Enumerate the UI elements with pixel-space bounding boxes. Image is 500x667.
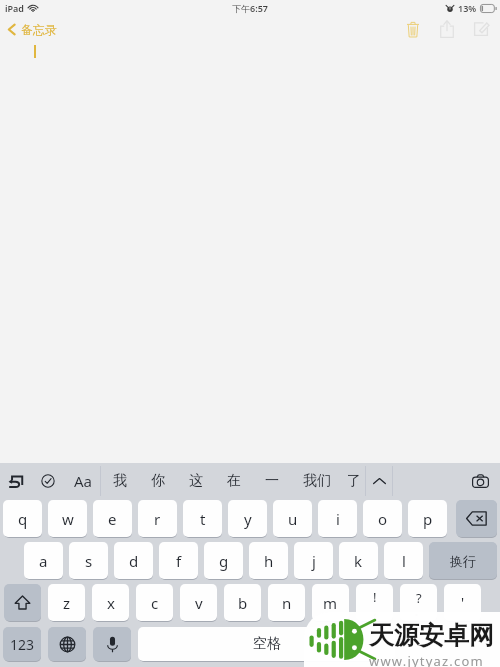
staticText: Aa	[74, 471, 93, 491]
staticText: 一	[265, 472, 279, 490]
staticText: 空格	[253, 635, 281, 653]
button[interactable]: ?	[400, 584, 437, 622]
staticText: 了	[347, 472, 361, 490]
staticText: h	[264, 551, 274, 571]
staticText: o	[378, 509, 388, 529]
button[interactable]: 、	[410, 627, 450, 662]
staticText: 13%	[458, 2, 477, 14]
staticText: 在	[227, 472, 241, 490]
button[interactable]: r	[138, 500, 177, 538]
staticText: 备忘录	[21, 22, 57, 37]
button[interactable]: Camera	[460, 463, 500, 498]
button[interactable]: e	[93, 500, 132, 538]
staticText: m	[323, 593, 338, 613]
staticText: t	[200, 509, 206, 529]
button[interactable]: Backspace	[456, 500, 497, 538]
button[interactable]: u	[273, 500, 312, 538]
button[interactable]: b	[224, 584, 261, 622]
staticText: 你	[151, 472, 165, 490]
button[interactable]: '	[444, 584, 481, 622]
button[interactable]: h	[249, 542, 288, 580]
staticText: '	[461, 593, 465, 612]
button[interactable]: 你	[139, 463, 177, 498]
staticText: 天源安卓网	[369, 620, 494, 651]
staticText: g	[219, 551, 229, 571]
button[interactable]: g	[204, 542, 243, 580]
button[interactable]: Compose note	[467, 15, 495, 43]
staticText: n	[282, 593, 292, 613]
staticText: 下午6:57	[232, 2, 268, 14]
button[interactable]: 换行	[429, 542, 497, 580]
button[interactable]: d	[114, 542, 153, 580]
staticText: j	[312, 551, 316, 571]
button[interactable]: z	[48, 584, 85, 622]
button[interactable]: Aa	[66, 463, 100, 498]
staticText: i	[336, 509, 340, 529]
button[interactable]: Delete	[399, 15, 427, 43]
button[interactable]: 这	[177, 463, 215, 498]
staticText: d	[129, 551, 139, 571]
button[interactable]: Shift	[4, 584, 41, 622]
button[interactable]: Confirm	[30, 463, 66, 498]
staticText: !	[373, 588, 377, 606]
button[interactable]: k	[339, 542, 378, 580]
staticText: www.jytyaz.com	[369, 652, 484, 667]
button[interactable]: o	[363, 500, 402, 538]
button[interactable]: 我	[101, 463, 139, 498]
staticText: 我们	[303, 472, 331, 490]
button[interactable]: 备忘录	[7, 16, 57, 42]
staticText: ?	[416, 589, 422, 607]
button[interactable]: a	[24, 542, 63, 580]
staticText: l	[402, 551, 406, 571]
button[interactable]: p	[408, 500, 447, 538]
button[interactable]: Dictation	[93, 627, 131, 662]
staticText: 这	[189, 472, 203, 490]
staticText: 换行	[450, 553, 476, 569]
button[interactable]: Share	[433, 15, 461, 43]
staticText: f	[176, 551, 182, 571]
button[interactable]: q	[3, 500, 42, 538]
button[interactable]: v	[180, 584, 217, 622]
staticText: x	[107, 593, 115, 613]
staticText: u	[288, 509, 298, 529]
button[interactable]: l	[384, 542, 423, 580]
staticText: p	[423, 509, 433, 529]
staticText: 我	[113, 472, 127, 490]
staticText: w	[62, 509, 74, 529]
staticText: a	[39, 551, 48, 571]
staticText: c	[151, 593, 159, 613]
button[interactable]: 我们	[291, 463, 343, 498]
button[interactable]: Expand candidates	[366, 463, 392, 498]
button[interactable]: n	[268, 584, 305, 622]
button[interactable]: 123	[3, 627, 41, 662]
button[interactable]: Switch keyboard	[48, 627, 86, 662]
staticText: 123	[10, 635, 35, 654]
staticText: y	[244, 509, 252, 529]
staticText: q	[18, 509, 28, 529]
button[interactable]: y	[228, 500, 267, 538]
staticText: k	[354, 551, 363, 571]
staticText: iPad	[5, 2, 24, 14]
button[interactable]: t	[183, 500, 222, 538]
button[interactable]: 了	[343, 463, 365, 498]
button[interactable]: 空格	[138, 627, 395, 662]
staticText: e	[108, 509, 117, 529]
staticText: b	[238, 593, 248, 613]
staticText: z	[63, 593, 71, 613]
button[interactable]: 一	[253, 463, 291, 498]
staticText: 、	[423, 635, 437, 653]
button[interactable]: f	[159, 542, 198, 580]
button[interactable]: s	[69, 542, 108, 580]
button[interactable]: j	[294, 542, 333, 580]
button[interactable]: 在	[215, 463, 253, 498]
button[interactable]: w	[48, 500, 87, 538]
staticText: r	[154, 509, 161, 529]
button[interactable]: x	[92, 584, 129, 622]
staticText: s	[85, 551, 93, 571]
button[interactable]: m	[312, 584, 349, 622]
button[interactable]: i	[318, 500, 357, 538]
button[interactable]: !	[356, 584, 393, 622]
button[interactable]: c	[136, 584, 173, 622]
button[interactable]: Undo	[0, 463, 30, 498]
